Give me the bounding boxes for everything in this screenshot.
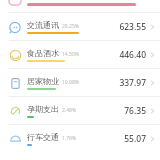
staticText: 14.50% <box>62 51 79 58</box>
staticText: 孕期支出 <box>27 104 59 114</box>
staticText: 446.40 <box>119 49 146 61</box>
button[interactable]: 交流通讯 <box>0 13 160 41</box>
staticText: 76.35 <box>124 105 146 117</box>
staticText: 食品酒水 <box>27 48 59 58</box>
staticText: 20.25% <box>62 23 79 30</box>
staticText: 55.07 <box>124 133 146 145</box>
staticText: 1.79% <box>62 135 77 142</box>
staticText: 交流通讯 <box>27 20 59 30</box>
staticText: 居家物业 <box>27 76 59 86</box>
staticText: 10.98% <box>62 79 79 86</box>
staticText: 337.97 <box>119 77 146 89</box>
button[interactable]: 孕期支出 <box>0 97 160 125</box>
button[interactable]: 行车交通 <box>0 125 160 153</box>
staticText: 行车交通 <box>27 132 59 142</box>
button[interactable] <box>0 0 160 13</box>
staticText: 623.55 <box>119 21 146 33</box>
staticText: 2.48% <box>62 107 77 114</box>
button[interactable]: 食品酒水 <box>0 41 160 69</box>
button[interactable]: 居家物业 <box>0 69 160 97</box>
